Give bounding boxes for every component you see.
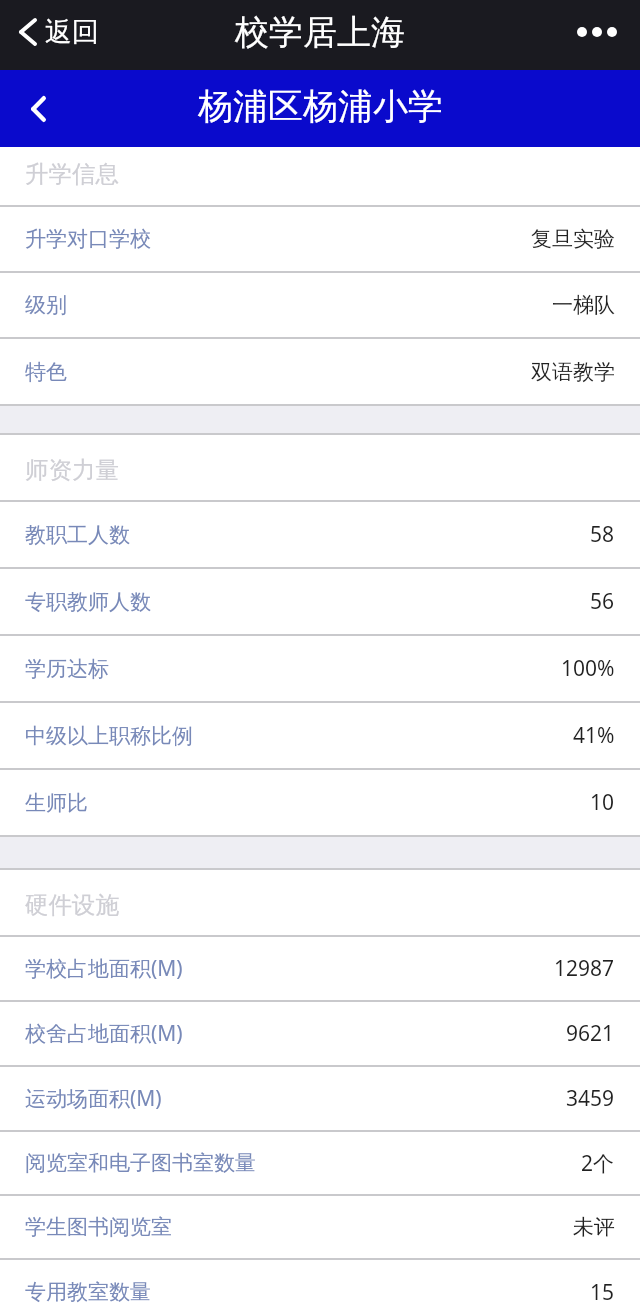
staticText: 生师比 — [25, 790, 88, 816]
staticText: 杨浦区杨浦小学 — [198, 84, 443, 128]
button[interactable]: 生师比 — [0, 769, 640, 836]
button[interactable]: 返回 — [0, 0, 115, 70]
staticText: 升学信息 — [25, 159, 119, 189]
staticText: 复旦实验 — [531, 226, 615, 252]
staticText: 专职教师人数 — [25, 589, 151, 615]
staticText: 学校占地面积(M) — [25, 954, 183, 983]
button[interactable]: 校舍占地面积(M) — [0, 1001, 640, 1066]
button[interactable]: More options — [553, 0, 640, 70]
button[interactable]: 专用教室数量 — [0, 1259, 640, 1309]
staticText: 教职工人数 — [25, 522, 130, 548]
button[interactable]: 级别 — [0, 272, 640, 338]
staticText: 专用教室数量 — [25, 1279, 151, 1305]
staticText: 级别 — [25, 292, 67, 318]
staticText: 学生图书阅览室 — [25, 1214, 172, 1240]
staticText: 特色 — [25, 359, 67, 385]
staticText: 师资力量 — [25, 455, 119, 485]
staticText: 校学居上海 — [235, 11, 405, 54]
staticText: 运动场面积(M) — [25, 1084, 162, 1113]
staticText: 双语教学 — [531, 359, 615, 385]
staticText: 硬件设施 — [25, 890, 119, 920]
button[interactable]: 学历达标 — [0, 635, 640, 702]
staticText: 一梯队 — [552, 292, 615, 318]
staticText: 学历达标 — [25, 656, 109, 682]
staticText: 10 — [590, 788, 615, 817]
staticText: 升学对口学校 — [25, 226, 151, 252]
staticText: 12987 — [554, 954, 615, 983]
staticText: 3459 — [566, 1084, 615, 1113]
button[interactable]: 学生图书阅览室 — [0, 1195, 640, 1259]
button[interactable]: 学校占地面积(M) — [0, 936, 640, 1001]
button[interactable]: Back — [0, 70, 69, 147]
staticText: 返回 — [45, 15, 99, 49]
staticText: 56 — [590, 587, 615, 616]
staticText: 2个 — [581, 1149, 615, 1178]
button[interactable]: 中级以上职称比例 — [0, 702, 640, 769]
staticText: 58 — [590, 520, 615, 549]
staticText: 41% — [573, 721, 615, 750]
button[interactable]: 升学对口学校 — [0, 206, 640, 272]
button[interactable]: 特色 — [0, 338, 640, 405]
staticText: 100% — [561, 654, 615, 683]
staticText: 未评 — [573, 1214, 615, 1240]
button[interactable]: 阅览室和电子图书室数量 — [0, 1131, 640, 1195]
staticText: 中级以上职称比例 — [25, 723, 193, 749]
staticText: 阅览室和电子图书室数量 — [25, 1150, 256, 1176]
button[interactable]: 教职工人数 — [0, 501, 640, 568]
button[interactable]: 专职教师人数 — [0, 568, 640, 635]
staticText: 15 — [590, 1278, 615, 1307]
staticText: 9621 — [566, 1019, 615, 1048]
button[interactable]: 运动场面积(M) — [0, 1066, 640, 1131]
staticText: 校舍占地面积(M) — [25, 1019, 183, 1048]
